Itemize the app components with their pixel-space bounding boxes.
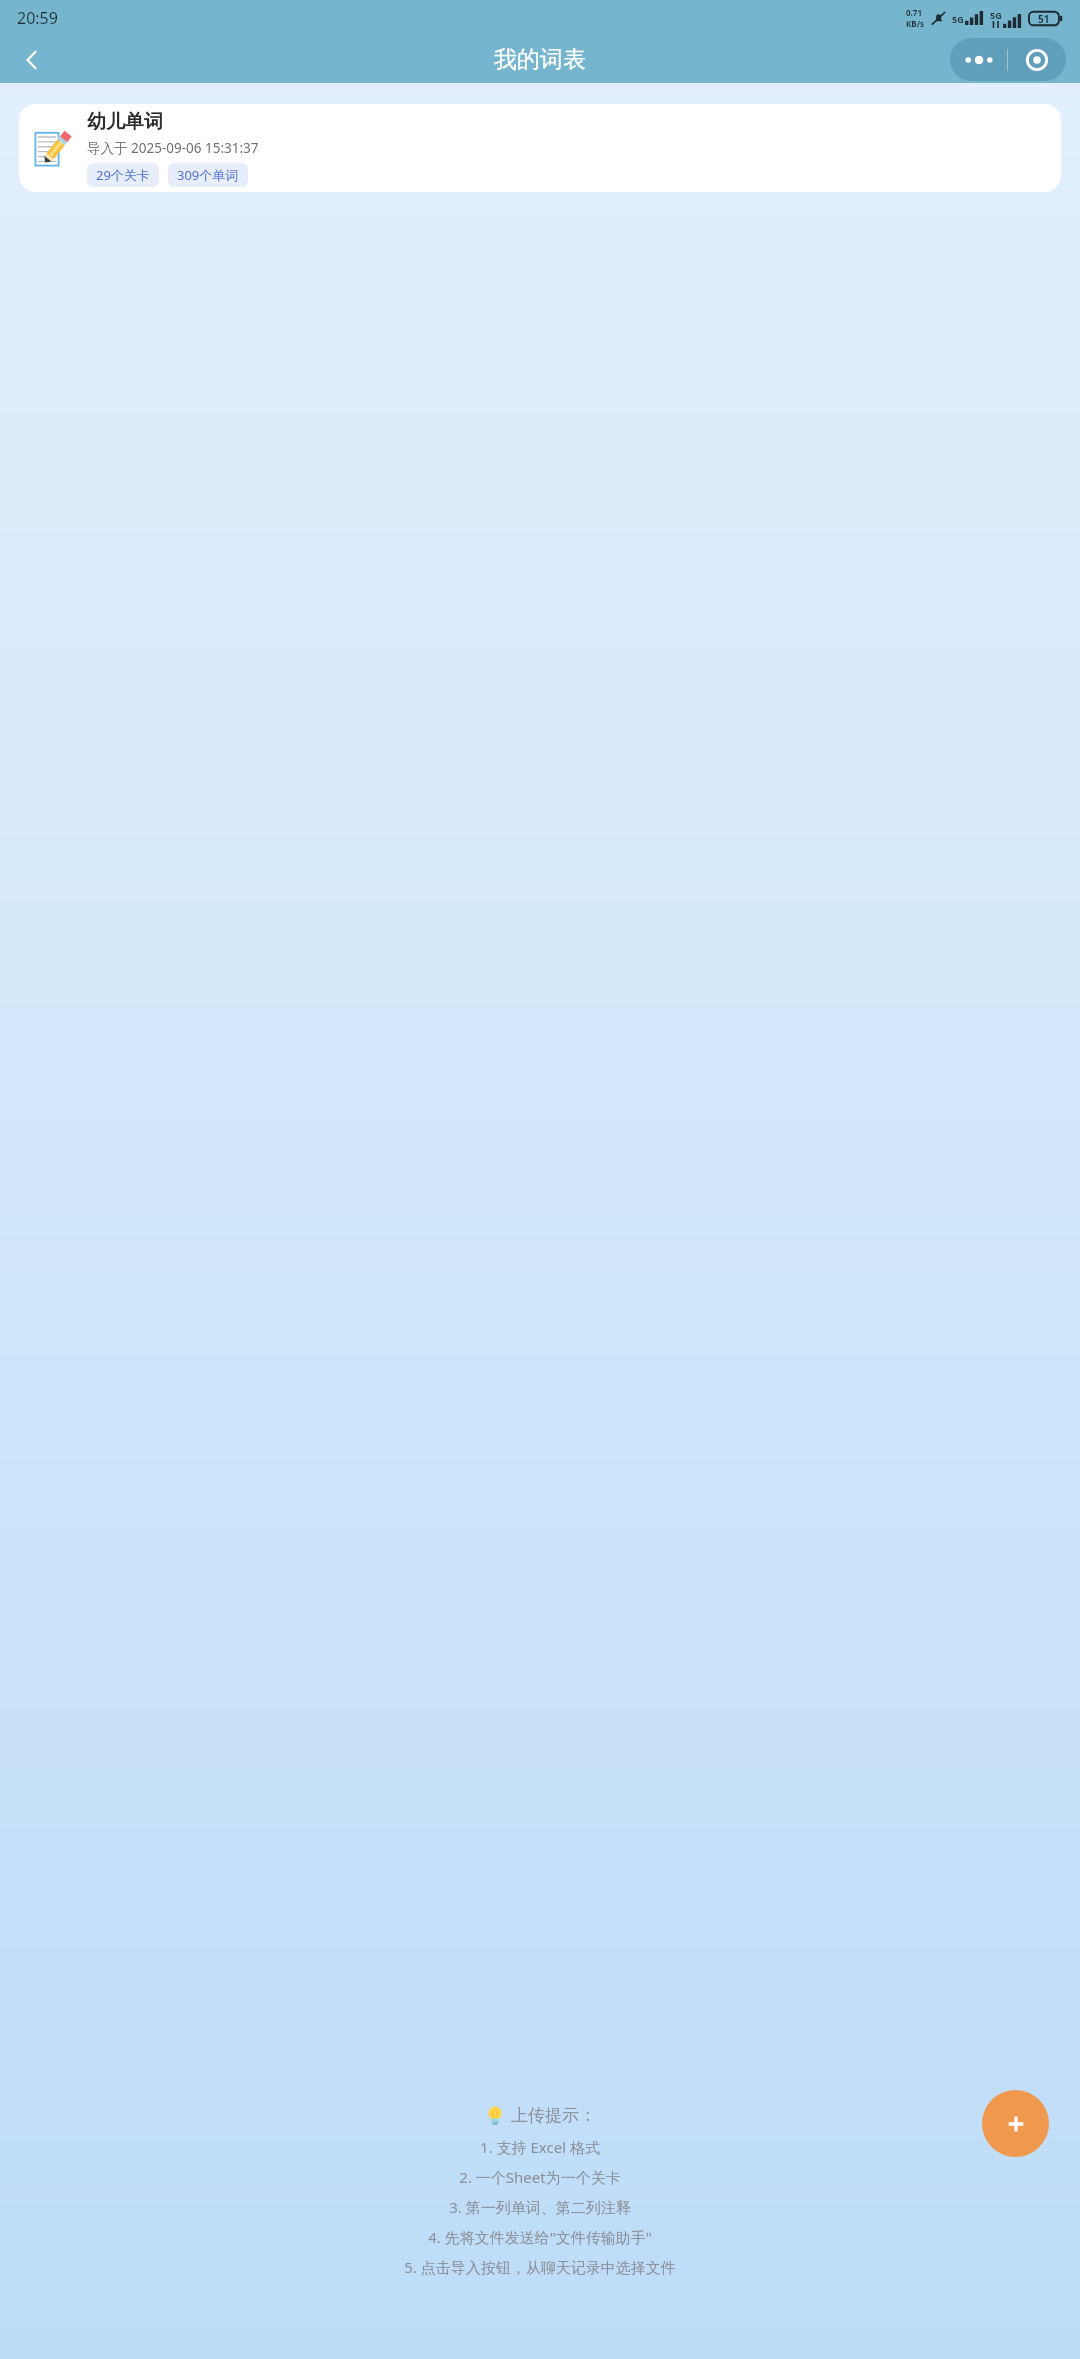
button[interactable]: More options [950, 38, 1007, 81]
staticText: 4. 先将文件发送给"文件传输助手" [428, 2227, 652, 2247]
staticText: 我的词表 [494, 45, 586, 74]
staticText: 1. 支持 Excel 格式 [480, 2137, 600, 2157]
staticText: 0.71 [906, 7, 922, 18]
staticText: 5G [990, 9, 1002, 21]
button[interactable]: Import word list [982, 2090, 1049, 2157]
staticText: 5. 点击导入按钮，从聊天记录中选择文件 [404, 2257, 676, 2277]
staticText: 5G [952, 13, 964, 25]
staticText: 51 [1038, 12, 1050, 26]
button[interactable]: Close mini program [1008, 38, 1066, 81]
button[interactable]: 29个关卡 [87, 163, 159, 187]
staticText: 上传提示： [511, 2105, 596, 2126]
staticText: 2. 一个Sheet为一个关卡 [459, 2167, 621, 2187]
button[interactable]: 309个单词 [168, 163, 248, 187]
staticText: KB/s [906, 18, 924, 29]
staticText: 309个单词 [177, 166, 239, 184]
button[interactable]: Back [10, 38, 54, 82]
staticText: 导入于 2025-09-06 15:31:37 [87, 139, 259, 157]
staticText: 29个关卡 [96, 166, 150, 184]
staticText: 幼儿单词 [87, 110, 163, 134]
staticText: 20:59 [17, 7, 58, 29]
staticText: 3. 第一列单词、第二列注释 [449, 2197, 631, 2217]
button[interactable]: 幼儿单词 [19, 104, 1061, 192]
